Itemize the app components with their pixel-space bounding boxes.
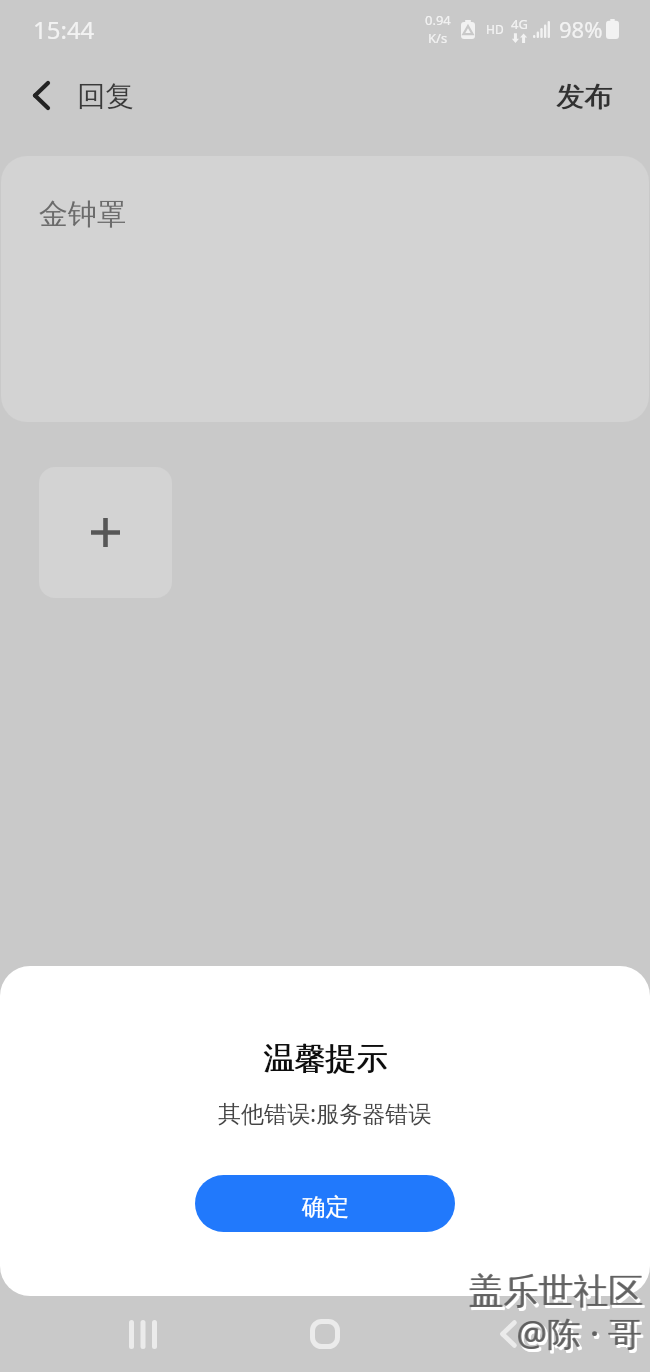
button[interactable]: Add photo — [39, 467, 172, 598]
staticText: 发布 — [556, 79, 612, 114]
staticText: 15:44 — [33, 13, 95, 46]
staticText: HD — [486, 21, 504, 37]
staticText: @陈 · 哥 — [518, 1313, 644, 1359]
staticText: 回复 — [77, 79, 134, 115]
staticText: @陈 · 哥 — [517, 1310, 643, 1356]
button[interactable]: Home — [290, 1299, 360, 1369]
staticText: @陈 · 哥 — [519, 1313, 645, 1359]
staticText: 温馨提示 — [263, 1039, 387, 1078]
button[interactable]: 确定 — [195, 1175, 455, 1232]
staticText: 4G — [511, 15, 528, 33]
button[interactable]: Back — [14, 73, 68, 127]
button[interactable]: 金钟罩 — [1, 156, 649, 422]
staticText: 其他错误:服务器错误 — [218, 1097, 432, 1128]
staticText: 盖乐世社区 — [471, 1271, 646, 1315]
staticText: @陈 · 哥 — [519, 1312, 645, 1358]
button[interactable]: 发布 — [518, 68, 650, 133]
staticText: 发布 — [557, 79, 613, 114]
staticText: 0.94 — [425, 11, 451, 29]
staticText: @陈 · 哥 — [516, 1310, 642, 1356]
staticText: 盖乐世社区 — [469, 1269, 644, 1313]
staticText: 98% — [559, 14, 603, 44]
staticText: K/s — [428, 29, 448, 47]
staticText: 温馨提示 — [264, 1039, 388, 1078]
staticText: 确定 — [302, 1192, 349, 1222]
staticText: 盖乐世社区 — [470, 1271, 645, 1315]
staticText: 盖乐世社区 — [470, 1272, 645, 1316]
staticText: 金钟罩 — [39, 196, 126, 233]
staticText: 盖乐世社区 — [468, 1269, 643, 1313]
button[interactable]: Recent apps — [108, 1299, 178, 1369]
staticText: 盖乐世社区 — [471, 1272, 646, 1316]
button[interactable]: Back — [473, 1299, 543, 1369]
staticText: @陈 · 哥 — [518, 1312, 644, 1358]
